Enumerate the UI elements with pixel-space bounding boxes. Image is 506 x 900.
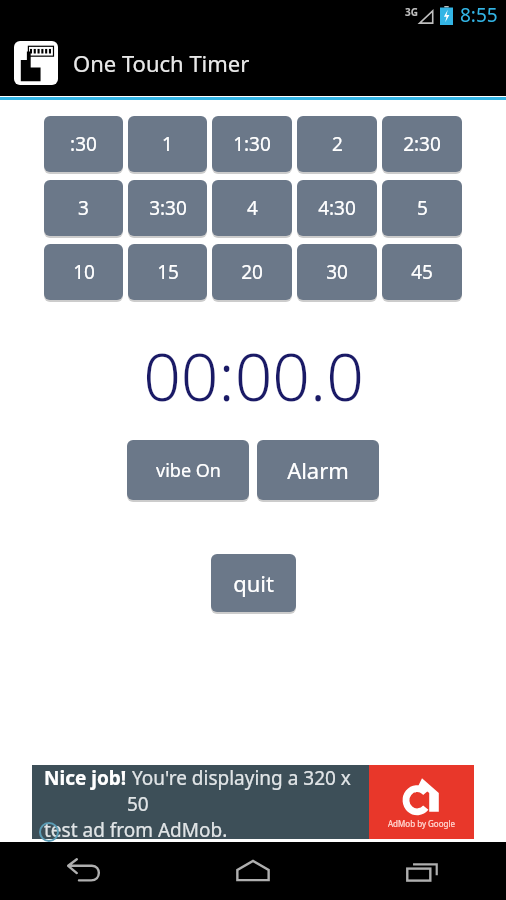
button[interactable]: Back [0,842,168,900]
staticText: 8:55 [460,2,498,28]
button[interactable]: 45 [382,244,462,300]
button[interactable]: vibe On [127,440,249,500]
staticText: 1 [162,131,173,157]
staticText: 1:30 [233,131,271,157]
button[interactable]: Nice job! [32,765,474,839]
staticText: AdMob by Google [388,818,456,829]
staticText: :30 [70,131,97,157]
button[interactable]: 1:30 [212,116,292,172]
staticText: test ad from AdMob. [44,817,228,839]
button[interactable]: 15 [128,244,207,300]
staticText: 3 [78,195,89,221]
button[interactable]: 4 [212,180,292,236]
staticText: 45 [411,259,433,285]
button[interactable]: Alarm [257,440,379,500]
staticText: 20 [241,259,263,285]
staticText: You're displaying a 320 x 50 [127,765,369,817]
button[interactable]: :30 [44,116,123,172]
staticText: 10 [73,259,95,285]
button[interactable]: 10 [44,244,123,300]
staticText: One Touch Timer [73,48,250,78]
button[interactable]: 1 [128,116,207,172]
button[interactable]: 3 [44,180,123,236]
staticText: 4:30 [318,195,356,221]
staticText: Alarm [287,455,349,485]
staticText: 3:30 [149,195,187,221]
button[interactable]: 5 [382,180,462,236]
staticText: 3G [405,5,418,19]
button[interactable]: 30 [297,244,377,300]
button[interactable]: 2 [297,116,377,172]
staticText: 00:00.0 [143,330,364,420]
staticText: 5 [417,195,428,221]
staticText: 2 [332,131,343,157]
button[interactable]: Recent apps [337,842,506,900]
staticText: 4 [247,195,258,221]
button[interactable]: quit [211,554,296,612]
button[interactable]: 3:30 [128,180,207,236]
staticText: Nice job! [44,765,127,791]
button[interactable]: 4:30 [297,180,377,236]
staticText: 30 [326,259,348,285]
button[interactable]: 20 [212,244,292,300]
staticText: vibe On [156,458,221,483]
button[interactable]: 2:30 [382,116,462,172]
staticText: 15 [157,259,179,285]
staticText: 2:30 [403,131,441,157]
staticText: quit [233,568,274,598]
button[interactable]: Home [168,842,337,900]
